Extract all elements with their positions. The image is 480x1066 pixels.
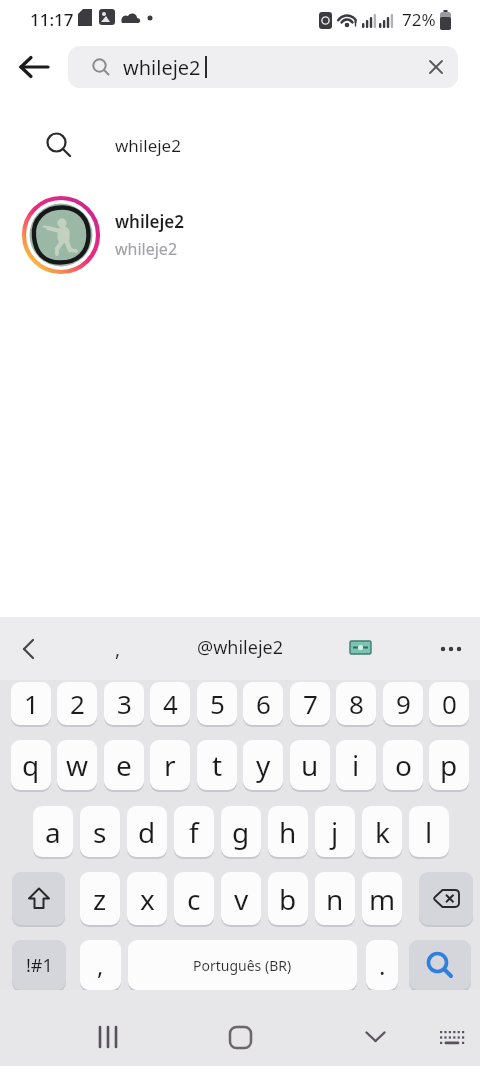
staticText: j bbox=[331, 813, 339, 851]
button[interactable] bbox=[409, 940, 471, 990]
button[interactable] bbox=[216, 1013, 264, 1061]
staticText: m bbox=[369, 880, 396, 918]
button[interactable]: b bbox=[268, 872, 308, 925]
staticText: !#1 bbox=[26, 953, 53, 978]
button[interactable]: p bbox=[429, 740, 469, 790]
staticText: i bbox=[352, 746, 360, 784]
staticText: 7 bbox=[303, 686, 318, 721]
button[interactable] bbox=[422, 617, 480, 680]
button[interactable]: . bbox=[366, 940, 398, 990]
button[interactable]: @whileje2 bbox=[197, 635, 283, 660]
staticText: h bbox=[279, 813, 297, 851]
button[interactable]: x bbox=[127, 872, 167, 925]
staticText: whileje2 bbox=[115, 238, 178, 260]
button[interactable]: v bbox=[221, 872, 261, 925]
staticText: whileje2 bbox=[115, 210, 185, 233]
button[interactable]: u bbox=[290, 740, 330, 790]
staticText: @whileje2 bbox=[197, 635, 283, 660]
button[interactable]: k bbox=[362, 806, 402, 857]
button[interactable]: 8 bbox=[336, 682, 376, 725]
staticText: 8 bbox=[349, 686, 364, 721]
button[interactable]: i bbox=[336, 740, 376, 790]
staticText: 11:17 bbox=[30, 8, 74, 31]
staticText: n bbox=[326, 880, 344, 918]
staticText: , bbox=[115, 636, 121, 662]
button[interactable]: l bbox=[409, 806, 449, 857]
staticText: . bbox=[379, 949, 386, 982]
button[interactable]: , bbox=[80, 940, 121, 990]
staticText: a bbox=[45, 813, 61, 851]
staticText: f bbox=[189, 813, 199, 851]
staticText: k bbox=[375, 813, 390, 851]
button[interactable]: d bbox=[127, 806, 167, 857]
button[interactable]: 4 bbox=[150, 682, 190, 725]
button[interactable] bbox=[432, 1018, 472, 1058]
staticText: u bbox=[301, 746, 319, 784]
button[interactable]: 9 bbox=[383, 682, 423, 725]
button[interactable]: j bbox=[315, 806, 355, 857]
staticText: 9 bbox=[396, 686, 411, 721]
staticText: 4 bbox=[163, 686, 178, 721]
staticText: v bbox=[234, 880, 249, 918]
staticText: z bbox=[93, 880, 107, 918]
button[interactable]: q bbox=[11, 740, 51, 790]
button[interactable]: m bbox=[362, 872, 402, 925]
staticText: s bbox=[93, 813, 107, 851]
staticText: 6 bbox=[256, 686, 271, 721]
staticText: Português (BR) bbox=[193, 956, 292, 975]
button[interactable] bbox=[0, 38, 68, 96]
staticText: 5 bbox=[210, 686, 225, 721]
staticText: y bbox=[256, 746, 271, 784]
button[interactable]: whileje2 bbox=[0, 117, 480, 173]
button[interactable]: e bbox=[104, 740, 144, 790]
staticText: b bbox=[279, 880, 297, 918]
staticText: l bbox=[425, 813, 433, 851]
button[interactable]: y bbox=[243, 740, 283, 790]
button[interactable]: whileje2 bbox=[68, 46, 458, 88]
button[interactable] bbox=[351, 1013, 399, 1061]
button[interactable] bbox=[419, 872, 473, 925]
staticText: d bbox=[138, 813, 156, 851]
staticText: , bbox=[97, 949, 104, 982]
button[interactable]: r bbox=[150, 740, 190, 790]
button[interactable]: 1 bbox=[11, 682, 51, 725]
button[interactable]: 0 bbox=[429, 682, 469, 725]
button[interactable]: 3 bbox=[104, 682, 144, 725]
button[interactable]: t bbox=[197, 740, 237, 790]
button[interactable]: h bbox=[268, 806, 308, 857]
button[interactable]: n bbox=[315, 872, 355, 925]
button[interactable] bbox=[414, 46, 458, 88]
button[interactable]: o bbox=[383, 740, 423, 790]
button[interactable]: c bbox=[174, 872, 214, 925]
button[interactable]: , bbox=[100, 617, 136, 680]
staticText: e bbox=[116, 746, 132, 784]
staticText: whileje2 bbox=[123, 54, 201, 81]
staticText: 0 bbox=[442, 686, 457, 721]
button[interactable]: f bbox=[174, 806, 214, 857]
staticText: 72% bbox=[402, 8, 436, 31]
button[interactable]: z bbox=[80, 872, 120, 925]
button[interactable]: s bbox=[80, 806, 120, 857]
button[interactable] bbox=[12, 872, 65, 925]
staticText: r bbox=[164, 746, 176, 784]
button[interactable]: w bbox=[57, 740, 97, 790]
button[interactable] bbox=[84, 1013, 132, 1061]
button[interactable]: 5 bbox=[197, 682, 237, 725]
button[interactable]: a bbox=[33, 806, 73, 857]
button[interactable]: !#1 bbox=[12, 940, 66, 990]
staticText: 3 bbox=[117, 686, 132, 721]
button[interactable]: g bbox=[221, 806, 261, 857]
button[interactable]: 7 bbox=[290, 682, 330, 725]
button[interactable]: whileje2 bbox=[0, 187, 480, 283]
button[interactable] bbox=[0, 617, 56, 680]
button[interactable]: 6 bbox=[243, 682, 283, 725]
staticText: p bbox=[440, 746, 458, 784]
button[interactable]: Português (BR) bbox=[128, 940, 357, 990]
staticText: o bbox=[395, 746, 412, 784]
staticText: g bbox=[232, 813, 250, 851]
staticText: whileje2 bbox=[115, 134, 181, 157]
staticText: w bbox=[66, 746, 89, 784]
staticText: t bbox=[212, 746, 223, 784]
button[interactable]: 2 bbox=[57, 682, 97, 725]
staticText: c bbox=[187, 880, 201, 918]
